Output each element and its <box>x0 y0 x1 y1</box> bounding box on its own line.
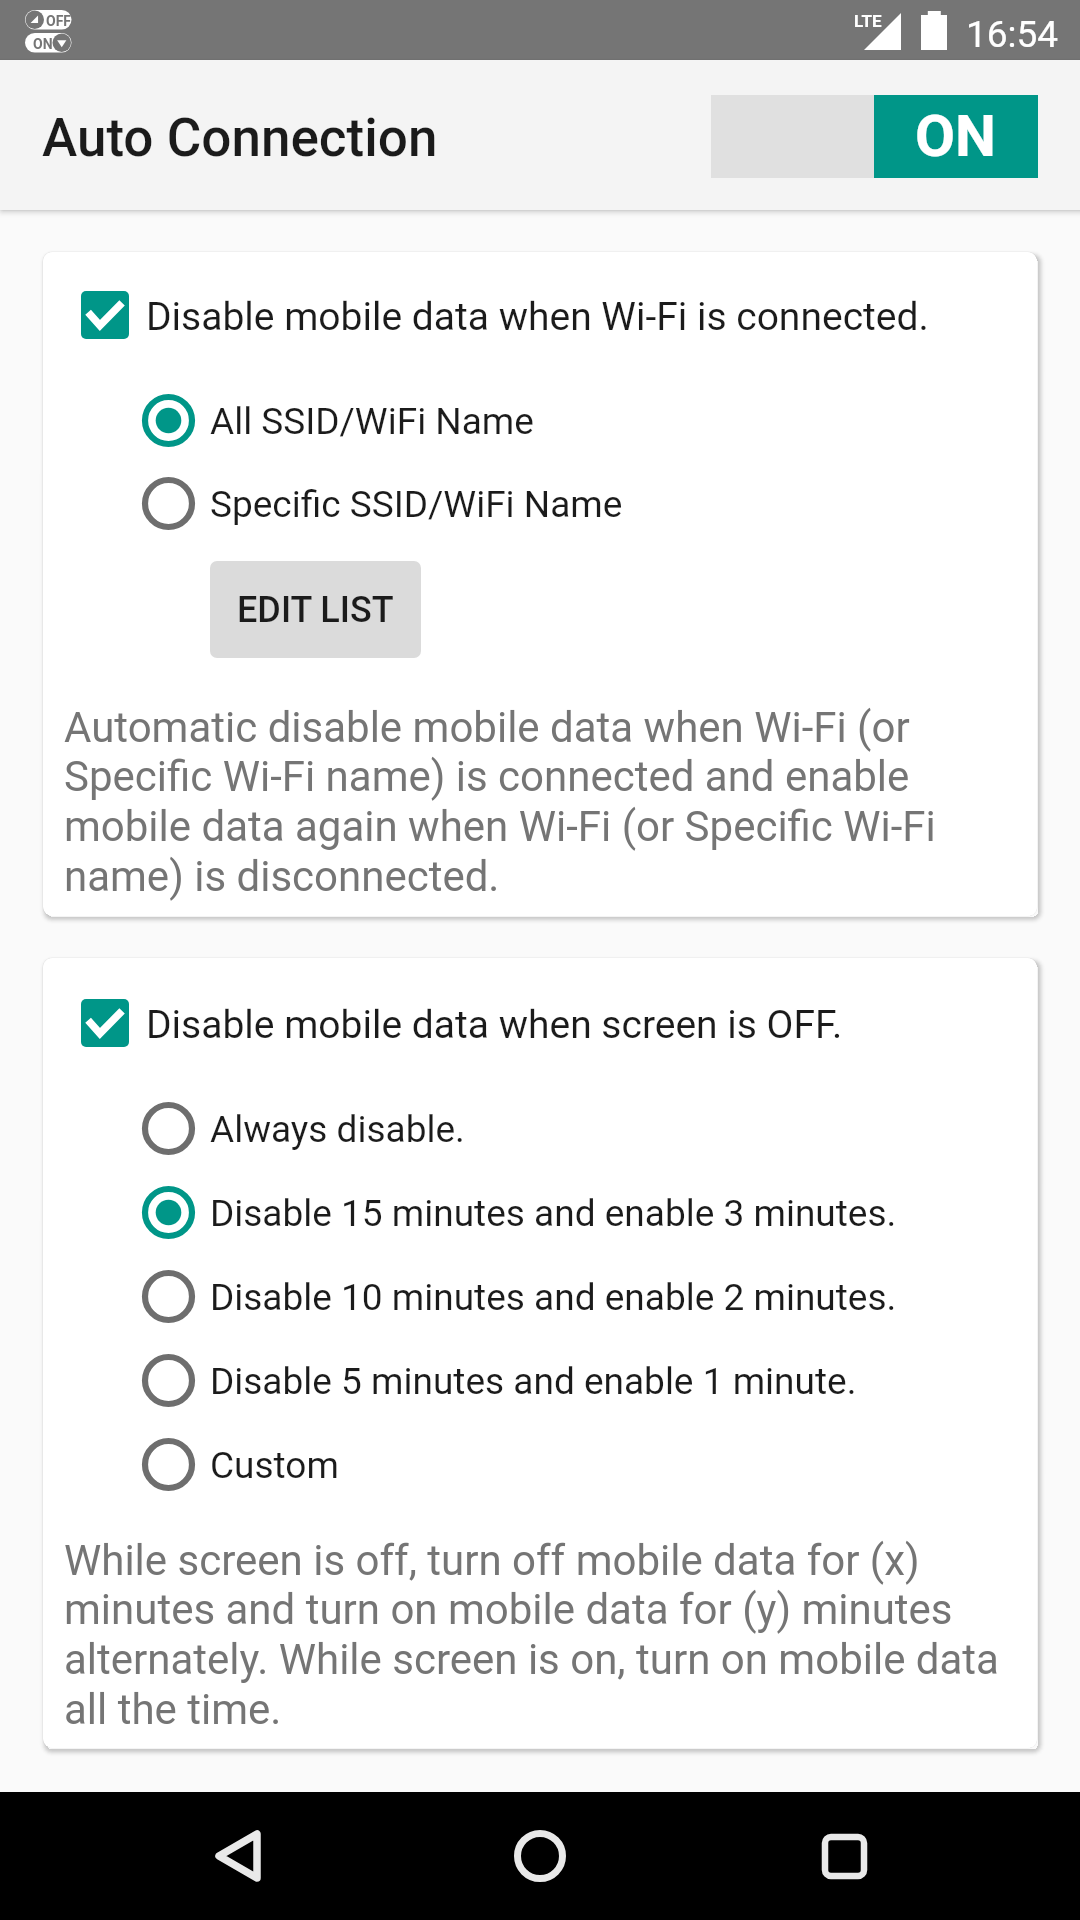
staticText: LTE <box>854 11 882 31</box>
staticText: EDIT LIST <box>237 589 394 631</box>
button[interactable]: Disable 5 minutes and enable 1 minute. <box>43 1338 1037 1422</box>
button[interactable]: Recents <box>776 1792 912 1920</box>
staticText: Disable 5 minutes and enable 1 minute. <box>210 1360 857 1403</box>
button[interactable]: Specific SSID/WiFi Name <box>43 461 1037 545</box>
staticText: All SSID/WiFi Name <box>210 400 534 443</box>
button[interactable]: Disable 15 minutes and enable 3 minutes. <box>43 1170 1037 1254</box>
staticText: Disable 15 minutes and enable 3 minutes. <box>210 1192 897 1235</box>
staticText: ON <box>915 102 997 170</box>
staticText: 16:54 <box>966 13 1059 56</box>
staticText: ON <box>33 36 53 52</box>
staticText: OFF <box>46 13 72 29</box>
staticText: Automatic disable mobile data when Wi-Fi… <box>64 703 1019 901</box>
staticText: While screen is off, turn off mobile dat… <box>64 1536 1019 1734</box>
staticText: Disable mobile data when Wi-Fi is connec… <box>146 294 929 340</box>
staticText: Disable mobile data when screen is OFF. <box>146 1002 843 1048</box>
button[interactable]: Custom <box>43 1422 1037 1506</box>
button[interactable]: Disable mobile data when screen is OFF. <box>43 981 1037 1065</box>
button[interactable]: EDIT LIST <box>210 561 421 658</box>
staticText: Disable 10 minutes and enable 2 minutes. <box>210 1276 897 1319</box>
button[interactable]: All SSID/WiFi Name <box>43 378 1037 462</box>
staticText: Custom <box>210 1444 339 1487</box>
button[interactable]: Always disable. <box>43 1086 1037 1170</box>
button[interactable]: Disable 10 minutes and enable 2 minutes. <box>43 1254 1037 1338</box>
button[interactable]: Disable mobile data when Wi-Fi is connec… <box>43 273 1037 357</box>
staticText: Always disable. <box>210 1108 465 1151</box>
button[interactable]: Home <box>472 1792 608 1920</box>
button[interactable]: Back <box>170 1792 306 1920</box>
staticText: Specific SSID/WiFi Name <box>210 483 623 526</box>
staticText: Auto Connection <box>42 107 438 169</box>
button[interactable]: ON <box>711 95 1038 178</box>
